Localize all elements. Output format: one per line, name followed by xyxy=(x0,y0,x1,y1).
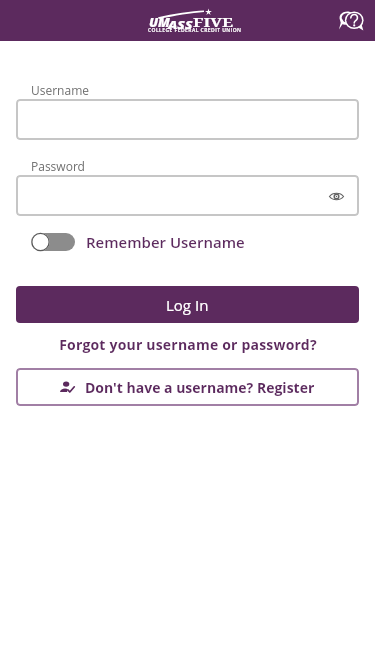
staticText: COLLEGE FEDERAL CREDIT UNION xyxy=(148,27,242,34)
staticText: Log In xyxy=(166,295,209,315)
button[interactable]: Don't have a username? Register xyxy=(16,368,359,406)
staticText: Username xyxy=(31,82,90,98)
button[interactable]: Forgot your username or password? xyxy=(16,330,359,358)
staticText: UM xyxy=(149,13,170,31)
button[interactable]: Help xyxy=(331,0,372,41)
button[interactable]: Show password xyxy=(16,175,359,216)
staticText: Forgot your username or password? xyxy=(59,335,317,354)
button[interactable] xyxy=(16,99,359,140)
button[interactable]: Remember Username xyxy=(31,232,245,252)
button[interactable]: Show password xyxy=(323,181,349,211)
button[interactable]: Log In xyxy=(16,286,359,323)
staticText: Password xyxy=(31,158,85,174)
staticText: ASS xyxy=(168,18,193,32)
staticText: Don't have a username? Register xyxy=(85,378,315,397)
staticText: Remember Username xyxy=(86,232,245,252)
staticText: FIVE xyxy=(193,14,234,30)
